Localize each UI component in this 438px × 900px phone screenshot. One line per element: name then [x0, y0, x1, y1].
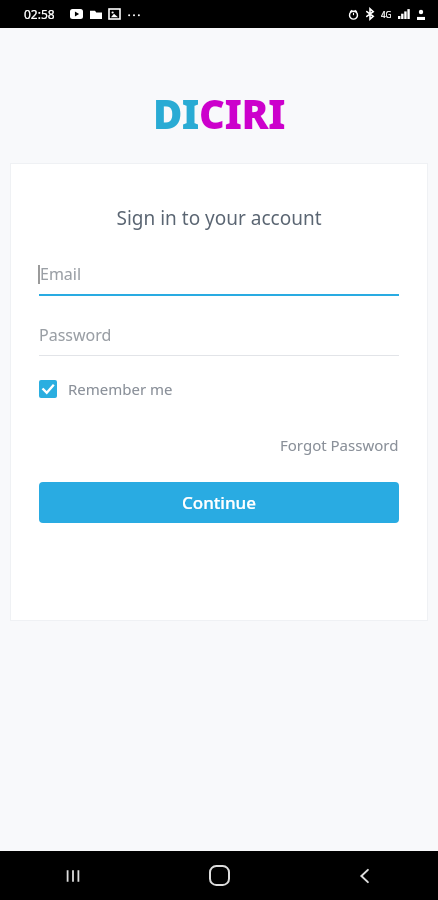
button[interactable]: Home	[146, 851, 292, 900]
staticText: Continue	[182, 491, 257, 514]
staticText: 02:58	[24, 6, 55, 22]
button[interactable]: Remember me	[39, 379, 173, 399]
staticText: Remember me	[68, 379, 173, 399]
staticText: Forgot Password	[280, 435, 399, 455]
button[interactable]: Continue	[39, 482, 399, 523]
staticText: Sign in to your account	[10, 205, 428, 231]
staticText: 4G	[381, 9, 392, 20]
button[interactable]: Forgot Password	[280, 435, 399, 455]
button[interactable]: Back	[292, 851, 438, 900]
button[interactable]: Password	[39, 324, 399, 356]
staticText: Password	[39, 324, 112, 346]
staticText: DICIRI	[153, 86, 286, 140]
button[interactable]: Recent apps	[0, 851, 146, 900]
button[interactable]: Email	[39, 263, 399, 296]
staticText: Email	[40, 263, 82, 285]
